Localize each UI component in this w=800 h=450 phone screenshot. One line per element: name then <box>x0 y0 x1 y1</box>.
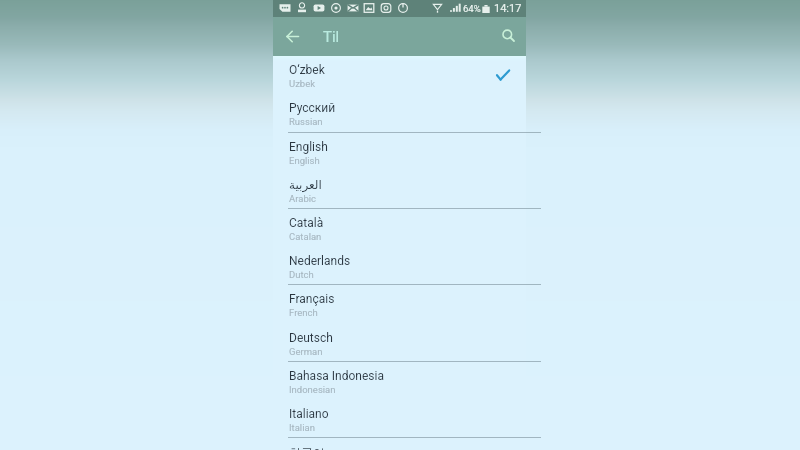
button[interactable]: Català <box>273 209 526 247</box>
button[interactable]: Bahasa Indonesia <box>273 362 526 400</box>
staticText: French <box>289 307 318 318</box>
staticText: Arabic <box>289 193 317 204</box>
staticText: Indonesian <box>289 384 336 395</box>
staticText: Deutsch <box>289 331 333 345</box>
staticText: Catalan <box>289 231 322 242</box>
button[interactable]: English <box>273 133 526 171</box>
button[interactable]: Nederlands <box>273 247 526 285</box>
button[interactable]: 한국어 <box>273 438 526 450</box>
staticText: Català <box>289 216 324 230</box>
staticText: Bahasa Indonesia <box>289 369 384 383</box>
button[interactable]: O‘zbek <box>273 56 526 94</box>
button[interactable]: العربية <box>273 171 526 209</box>
staticText: English <box>289 140 328 154</box>
button[interactable]: Search <box>494 23 520 49</box>
staticText: 14:17 <box>494 2 522 15</box>
button[interactable]: Русский <box>273 94 526 132</box>
staticText: Nederlands <box>289 254 351 268</box>
staticText: Dutch <box>289 269 314 280</box>
staticText: Russian <box>289 116 323 127</box>
staticText: 한국어 <box>289 445 325 450</box>
staticText: English <box>289 155 320 166</box>
button[interactable]: Deutsch <box>273 324 526 362</box>
staticText: 64% <box>463 3 481 14</box>
staticText: العربية <box>289 178 322 192</box>
staticText: Русский <box>289 101 336 115</box>
staticText: Italian <box>289 422 315 433</box>
staticText: Uzbek <box>289 78 316 89</box>
staticText: O‘zbek <box>289 63 325 77</box>
button[interactable]: Italiano <box>273 400 526 438</box>
staticText: German <box>289 346 323 357</box>
staticText: Til <box>323 28 340 46</box>
staticText: Français <box>289 292 335 306</box>
staticText: Italiano <box>289 407 329 421</box>
button[interactable]: Français <box>273 285 526 323</box>
button[interactable]: Back <box>277 23 303 49</box>
